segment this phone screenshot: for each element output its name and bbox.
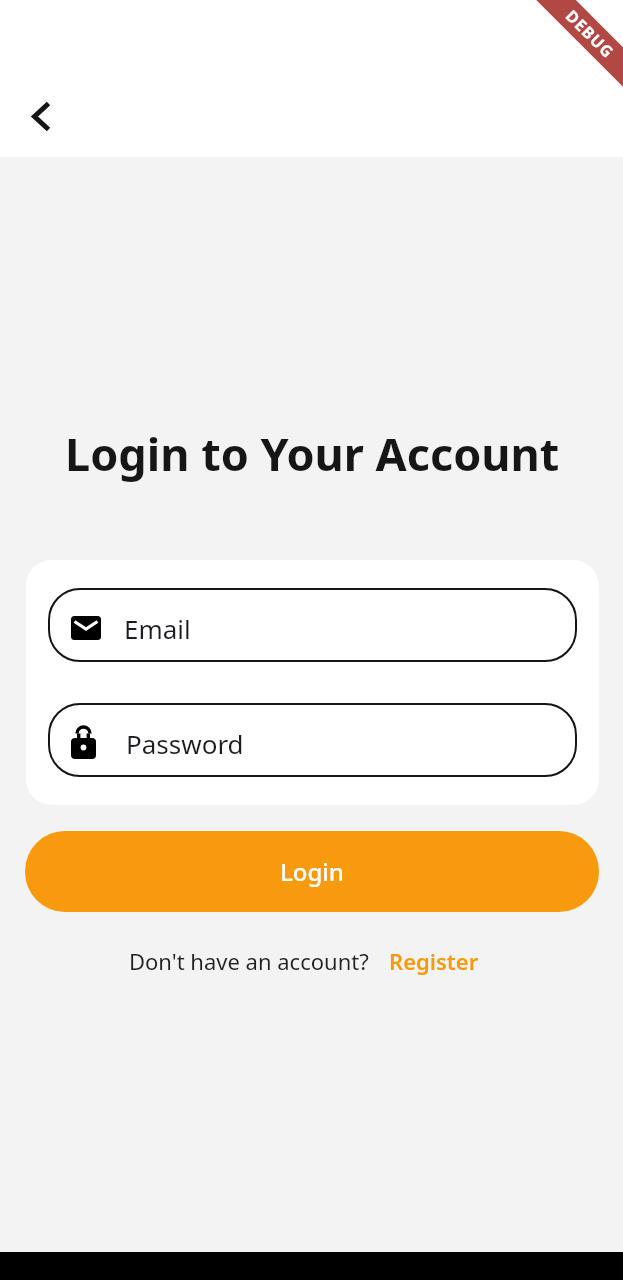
button[interactable]: Register bbox=[389, 946, 479, 976]
staticText: Login to Your Account bbox=[65, 423, 560, 484]
staticText: Password bbox=[126, 726, 244, 761]
button[interactable] bbox=[19, 94, 64, 139]
staticText: DEBUG bbox=[561, 5, 619, 63]
staticText: Don't have an account? bbox=[129, 946, 369, 976]
button[interactable]: Login bbox=[25, 831, 599, 912]
staticText: Login bbox=[280, 855, 344, 888]
staticText: Email bbox=[124, 611, 191, 646]
staticText: Register bbox=[389, 946, 479, 976]
button[interactable]: Password bbox=[48, 703, 577, 777]
button[interactable]: Email bbox=[48, 588, 577, 662]
